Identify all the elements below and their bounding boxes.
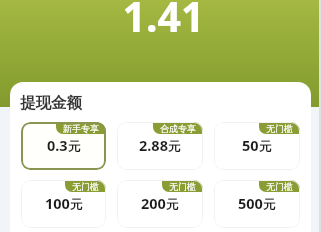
button[interactable]: 无门槛 xyxy=(214,180,300,228)
staticText: 提现金额 xyxy=(20,93,82,113)
staticText: 2.88 xyxy=(139,135,168,155)
button[interactable]: 无门槛 xyxy=(117,180,203,228)
staticText: 1.41 xyxy=(3,0,321,44)
staticText: 100 xyxy=(45,193,70,213)
staticText: 元 xyxy=(263,197,276,213)
staticText: 500 xyxy=(238,193,263,213)
staticText: 元 xyxy=(259,139,272,155)
staticText: 0.3 xyxy=(47,135,68,155)
staticText: 无门槛 xyxy=(266,181,293,192)
staticText: 元 xyxy=(168,139,181,155)
staticText: 元 xyxy=(166,197,179,213)
staticText: 新手专享 xyxy=(63,123,99,134)
button[interactable]: 无门槛 xyxy=(21,180,106,228)
button[interactable]: 无门槛 xyxy=(214,122,300,170)
staticText: 无门槛 xyxy=(72,181,99,192)
staticText: 元 xyxy=(68,139,81,155)
button[interactable]: 合成专享 xyxy=(117,122,203,170)
staticText: 无门槛 xyxy=(266,123,293,134)
staticText: 200 xyxy=(141,193,166,213)
staticText: 无门槛 xyxy=(169,181,196,192)
staticText: 元 xyxy=(70,197,83,213)
button[interactable]: 新手专享 xyxy=(21,122,106,170)
staticText: 合成专享 xyxy=(160,123,196,134)
staticText: 50 xyxy=(242,135,259,155)
